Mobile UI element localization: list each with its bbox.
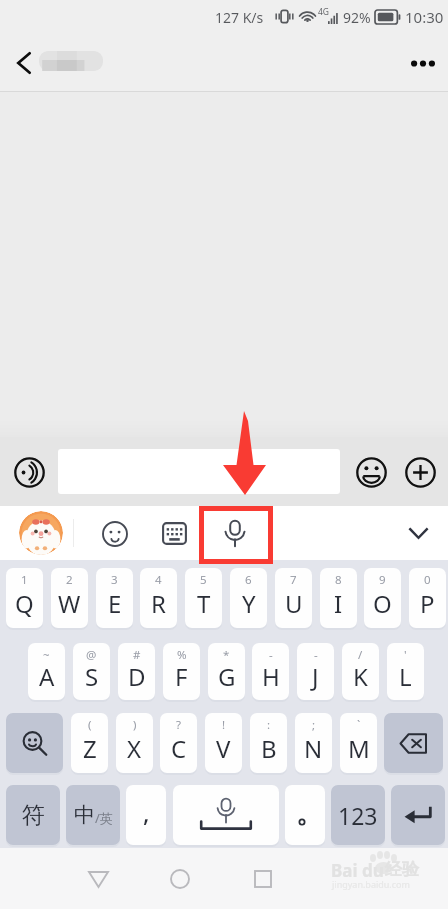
staticText: Y	[242, 587, 256, 620]
button[interactable]: Space	[173, 785, 279, 845]
staticText: 中	[74, 802, 95, 828]
button[interactable]: 2	[51, 568, 88, 628]
staticText: (	[88, 717, 92, 733]
button[interactable]: Enter	[391, 785, 445, 845]
button[interactable]: Back	[0, 34, 47, 92]
button[interactable]: 8	[320, 568, 357, 628]
button[interactable]: 符	[6, 785, 60, 845]
button[interactable]: ?	[160, 713, 197, 773]
staticText: )	[133, 717, 137, 733]
staticText: O	[373, 587, 392, 620]
staticText: K	[353, 660, 368, 693]
button[interactable]: 7	[275, 568, 312, 628]
staticText: 9	[379, 572, 386, 588]
button[interactable]: 9	[364, 568, 401, 628]
button[interactable]: Sticker pack	[19, 511, 63, 555]
staticText: H	[262, 660, 280, 693]
staticText: 8	[335, 572, 342, 588]
button[interactable]: -	[297, 643, 334, 700]
button[interactable]: Emoticons	[95, 514, 134, 553]
button[interactable]: More functions	[401, 453, 439, 491]
staticText: D	[128, 660, 146, 693]
staticText: V	[216, 732, 231, 765]
button[interactable]: ~	[28, 643, 65, 700]
button[interactable]	[39, 51, 103, 71]
staticText: Z	[83, 732, 97, 765]
button[interactable]: Delete	[384, 713, 443, 773]
button[interactable]: 123	[331, 785, 385, 845]
button[interactable]	[285, 785, 325, 845]
staticText: %	[177, 647, 187, 663]
staticText: P	[420, 587, 435, 620]
button[interactable]: Back	[74, 855, 122, 903]
other: Enter	[391, 785, 445, 845]
staticText: 符	[22, 801, 45, 830]
staticText: jingyan.baidu.com	[332, 878, 410, 890]
staticText: `	[357, 717, 361, 733]
button[interactable]: Recent apps	[239, 855, 287, 903]
button[interactable]: #	[118, 643, 155, 700]
button[interactable]: Voice message	[10, 453, 48, 491]
button[interactable]: Hide keyboard	[395, 514, 442, 553]
staticText: M	[348, 732, 370, 765]
button[interactable]: Emoji search	[6, 713, 63, 773]
staticText: Q	[15, 587, 34, 620]
button[interactable]: @	[73, 643, 110, 700]
button[interactable]: )	[116, 713, 153, 773]
staticText: 6	[245, 572, 252, 588]
button[interactable]: 4	[140, 568, 177, 628]
button[interactable]: 6	[230, 568, 267, 628]
staticText: @	[86, 647, 97, 663]
button[interactable]: Keyboard	[155, 514, 194, 553]
staticText: 0	[424, 572, 431, 588]
button[interactable]: 5	[185, 568, 222, 628]
staticText: '	[404, 647, 407, 663]
button[interactable]: ,	[126, 785, 166, 845]
staticText: 123	[338, 800, 378, 831]
button[interactable]: Emoji	[352, 453, 390, 491]
button[interactable]: ;	[295, 713, 332, 773]
button[interactable]: 1	[6, 568, 43, 628]
staticText: /英	[95, 809, 113, 827]
staticText: Bai du	[331, 859, 384, 882]
staticText: N	[304, 732, 323, 765]
staticText: 4	[155, 572, 162, 588]
staticText: ~	[43, 647, 50, 663]
staticText: 7	[290, 572, 297, 588]
staticText: 127 K/s	[215, 8, 264, 27]
button[interactable]: -	[252, 643, 289, 700]
button[interactable]: :	[250, 713, 287, 773]
button[interactable]: (	[71, 713, 108, 773]
other: Emoji search	[6, 713, 63, 773]
staticText: ;	[312, 717, 316, 733]
button[interactable]	[58, 449, 340, 494]
button[interactable]: `	[340, 713, 377, 773]
button[interactable]: /	[342, 643, 379, 700]
staticText: !	[222, 717, 226, 733]
staticText: S	[85, 660, 99, 693]
button[interactable]: Voice input	[215, 514, 254, 553]
staticText: -	[314, 647, 318, 663]
staticText: T	[197, 587, 211, 620]
button[interactable]: !	[205, 713, 242, 773]
staticText: A	[39, 660, 55, 693]
staticText: B	[261, 732, 277, 765]
staticText: :	[267, 717, 271, 733]
button[interactable]: 0	[409, 568, 446, 628]
button[interactable]: *	[208, 643, 245, 700]
button[interactable]: '	[387, 643, 424, 700]
button[interactable]: %	[163, 643, 200, 700]
button[interactable]: Home	[156, 855, 204, 903]
staticText: 10:30	[405, 7, 444, 27]
staticText: 2	[66, 572, 73, 588]
staticText: ?	[176, 717, 181, 733]
staticText: 1	[21, 572, 28, 588]
staticText: C	[171, 732, 187, 765]
staticText: #	[133, 647, 141, 663]
button[interactable]: 中	[66, 785, 120, 845]
staticText: ,	[143, 796, 150, 829]
button[interactable]: 3	[96, 568, 133, 628]
button[interactable]: More options	[397, 34, 448, 92]
staticText: 3	[111, 572, 118, 588]
staticText: -	[269, 647, 273, 663]
